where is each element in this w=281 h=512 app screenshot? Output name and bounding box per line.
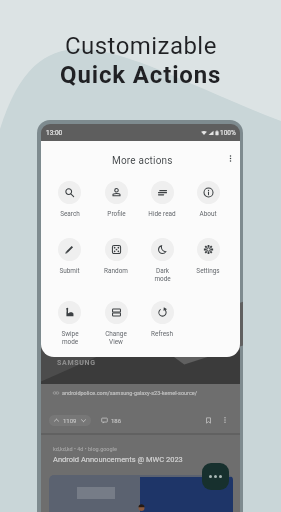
staticText: Profile <box>107 210 126 218</box>
staticText: Refresh <box>151 330 173 338</box>
staticText: androidpolice.com/samsung-galaxy-s23-ker… <box>62 390 197 396</box>
button[interactable]: Swipe mode <box>46 301 93 346</box>
button[interactable]: Random <box>93 238 139 275</box>
staticText: Hide read <box>148 210 176 218</box>
staticText: kd,kd,kd • 4d • blog.google <box>53 446 117 452</box>
staticText: Search <box>60 210 80 218</box>
button[interactable]: Submit <box>46 238 93 275</box>
staticText: 13:00 <box>46 129 63 137</box>
button[interactable]: Bookmark <box>202 414 214 426</box>
staticText: 186 <box>111 417 122 424</box>
button[interactable]: Profile <box>93 181 139 218</box>
button[interactable]: Quick actions <box>202 463 229 490</box>
staticText: Random <box>104 267 128 275</box>
staticText: More actions <box>112 155 173 167</box>
staticText: Submit <box>59 267 80 275</box>
staticText: 100% <box>220 129 236 137</box>
staticText: Quick Actions <box>60 61 222 89</box>
button[interactable]: Settings <box>185 238 231 275</box>
button[interactable]: Dark mode <box>139 238 185 283</box>
staticText: Settings <box>196 267 220 275</box>
staticText: Change View <box>105 330 127 346</box>
staticText: Swipe mode <box>61 330 79 346</box>
staticText: Dark mode <box>154 267 171 283</box>
staticText: Android Announcements @ MWC 2023 <box>53 455 183 464</box>
button[interactable]: Search <box>46 181 93 218</box>
button[interactable]: 186 <box>99 415 124 426</box>
staticText: 1109 <box>63 417 77 424</box>
button[interactable]: Refresh <box>139 301 185 338</box>
staticText: SAMSUNG <box>57 359 96 367</box>
button[interactable]: More <box>219 414 231 426</box>
staticText: About <box>199 210 217 218</box>
button[interactable]: About <box>185 181 231 218</box>
button[interactable]: Hide read <box>139 181 185 218</box>
button[interactable]: Change View <box>93 301 139 346</box>
staticText: Customizable <box>65 32 217 60</box>
button[interactable]: 1109 <box>49 415 91 426</box>
button[interactable]: More options <box>223 151 238 166</box>
